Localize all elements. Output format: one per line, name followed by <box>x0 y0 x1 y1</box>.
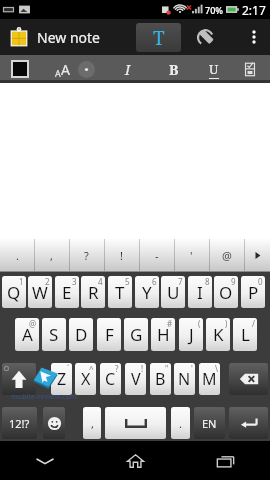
staticText: U <box>209 60 219 78</box>
staticText: ' <box>191 363 193 374</box>
button[interactable]: F <box>97 318 121 351</box>
staticText: 5 <box>125 276 130 287</box>
staticText: O <box>219 281 233 304</box>
button[interactable]: A <box>15 318 39 351</box>
staticText: W <box>32 281 48 304</box>
staticText: # <box>167 318 173 329</box>
staticText: 6 <box>152 276 157 287</box>
button[interactable]: D <box>69 318 93 351</box>
staticText: P <box>248 281 259 304</box>
staticText: J <box>189 323 194 346</box>
button[interactable]: Z <box>51 363 72 395</box>
staticText: @ <box>29 318 37 329</box>
button[interactable]: ! <box>104 239 139 272</box>
button[interactable]: U <box>161 276 185 308</box>
button[interactable]: Backspace <box>229 363 268 395</box>
button[interactable]: R <box>81 276 105 308</box>
button[interactable]: W <box>28 276 52 308</box>
button[interactable]: ' <box>174 239 209 272</box>
staticText: @ <box>222 248 232 263</box>
staticText: X <box>81 368 91 390</box>
staticText: 2 <box>45 276 50 287</box>
button[interactable]: Home <box>90 441 180 480</box>
button[interactable]: Checklist <box>242 61 258 77</box>
button[interactable]: . <box>171 407 190 439</box>
button[interactable]: Back <box>0 441 90 480</box>
staticText: A <box>55 67 61 79</box>
button[interactable]: G <box>124 318 148 351</box>
button[interactable]: T <box>108 276 132 308</box>
button[interactable]: Recent apps <box>180 441 270 480</box>
button[interactable]: Emoji <box>43 407 65 439</box>
staticText: ( <box>198 318 201 329</box>
staticText: C <box>105 368 116 390</box>
staticText: ) <box>225 318 228 329</box>
button[interactable]: B <box>163 57 185 82</box>
button[interactable]: Shift <box>2 363 36 395</box>
button[interactable]: T <box>136 23 181 52</box>
staticText: , <box>91 416 94 431</box>
button[interactable]: More options <box>243 19 265 55</box>
button[interactable]: 12!? <box>2 407 37 439</box>
button[interactable]: X <box>75 363 96 395</box>
button[interactable]: N <box>174 363 195 395</box>
button[interactable]: L <box>233 318 257 351</box>
button[interactable]: K <box>206 318 230 351</box>
staticText: EN <box>202 416 217 431</box>
button[interactable]: Size <box>78 61 95 78</box>
button[interactable]: J <box>179 318 203 351</box>
button[interactable]: ? <box>69 239 104 272</box>
staticText: 4 <box>98 276 103 287</box>
staticText: 8 <box>205 276 210 287</box>
staticText: A <box>61 60 70 79</box>
staticText: U <box>167 281 180 304</box>
staticText: 9 <box>231 276 236 287</box>
button[interactable]: M <box>199 363 220 395</box>
staticText: T <box>153 25 165 51</box>
staticText: 7 <box>178 276 183 287</box>
staticText: G <box>130 323 143 346</box>
staticText: ^ <box>89 363 94 374</box>
staticText: S <box>49 323 59 346</box>
button[interactable]: U <box>209 60 219 79</box>
button[interactable]: - <box>139 239 174 272</box>
button[interactable]: A <box>55 60 70 79</box>
staticText: D <box>75 323 88 346</box>
button[interactable]: V <box>125 363 146 395</box>
button[interactable]: @ <box>209 239 244 272</box>
button[interactable]: More suggestions <box>244 239 270 272</box>
button[interactable]: EN <box>194 407 225 439</box>
button[interactable]: E <box>55 276 79 308</box>
staticText: / <box>252 318 255 329</box>
button[interactable]: . <box>0 239 34 272</box>
button[interactable]: B <box>150 363 171 395</box>
staticText: \ <box>215 363 218 374</box>
button[interactable]: O <box>214 276 238 308</box>
button[interactable]: I <box>117 57 139 82</box>
staticText: " <box>165 363 169 374</box>
staticText: . <box>179 416 182 431</box>
button[interactable]: P <box>241 276 265 308</box>
staticText: ! <box>141 363 144 374</box>
button[interactable]: H <box>151 318 175 351</box>
staticText: Z <box>57 368 67 390</box>
staticText: . <box>16 248 19 263</box>
button[interactable]: , <box>83 407 101 439</box>
staticText: 0 <box>258 276 263 287</box>
button[interactable]: Eraser <box>184 23 229 52</box>
staticText: ' <box>190 248 193 263</box>
staticText: H <box>157 323 170 346</box>
staticText: ´ <box>67 363 70 374</box>
staticText: A <box>22 323 33 346</box>
button[interactable]: S <box>42 318 66 351</box>
button[interactable]: Q <box>2 276 26 308</box>
staticText: R <box>88 281 99 304</box>
button[interactable]: Y <box>135 276 159 308</box>
button[interactable]: I <box>188 276 212 308</box>
button[interactable]: Space <box>105 407 166 439</box>
button[interactable]: , <box>34 239 69 272</box>
staticText: K <box>213 323 224 346</box>
button[interactable]: C <box>100 363 121 395</box>
button[interactable]: Enter <box>229 407 268 439</box>
